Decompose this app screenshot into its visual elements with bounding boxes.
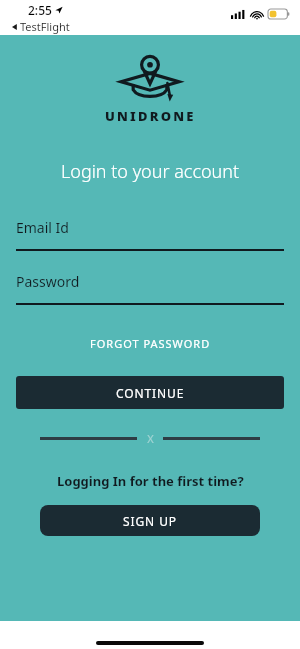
staticText: FORGOT PASSWORD bbox=[90, 336, 211, 351]
staticText: Password bbox=[16, 272, 80, 291]
button[interactable]: CONTINUE bbox=[16, 376, 284, 409]
staticText: UNIDRONE bbox=[105, 107, 196, 125]
staticText: CONTINUE bbox=[116, 385, 185, 401]
staticText: 2:55 bbox=[28, 2, 52, 18]
staticText: Login to your account bbox=[61, 159, 240, 184]
staticText: TestFlight bbox=[20, 19, 70, 34]
staticText: X bbox=[147, 431, 154, 446]
staticText: Logging In for the first time? bbox=[57, 472, 244, 490]
other: Unidrone logo bbox=[121, 53, 179, 101]
button[interactable]: FORGOT PASSWORD bbox=[0, 330, 300, 357]
button[interactable]: Email Id bbox=[16, 218, 284, 251]
staticText: SIGN UP bbox=[123, 513, 177, 529]
button[interactable]: SIGN UP bbox=[40, 505, 260, 536]
staticText: Email Id bbox=[16, 218, 69, 237]
button[interactable]: Password bbox=[16, 272, 284, 305]
